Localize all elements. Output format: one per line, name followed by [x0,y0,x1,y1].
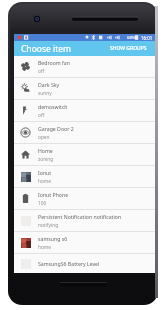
other: Garage door [20,127,31,138]
staticText: zoning [38,156,54,163]
other: Fan [20,61,31,72]
staticText: Home [38,147,53,154]
staticText: 100 [38,200,47,207]
other: Avatar [21,238,31,248]
staticText: Choose item [21,43,71,55]
staticText: Bedroom fan [38,59,70,66]
staticText: demoswitch [38,103,68,110]
staticText: Ionut [38,169,52,176]
button[interactable]: Garage door [14,122,155,144]
button[interactable]: SHOW GROUPS [107,42,150,55]
staticText: SHOW GROUPS [110,45,147,52]
staticText: off [38,68,45,75]
staticText: home [38,178,52,185]
staticText: Dark Sky [38,81,60,88]
staticText: 68% [127,35,136,41]
staticText: notifying [38,222,59,229]
staticText: home [38,244,52,251]
button[interactable]: Item [14,254,155,273]
button[interactable]: Fan [14,56,155,78]
staticText: Persistent Notification notification [38,213,122,220]
other: Switch [20,105,31,116]
staticText: 16:01 [141,35,153,41]
button[interactable]: Avatar [14,232,155,254]
other: Avatar [21,172,31,182]
other: Battery [20,193,31,204]
other: Weather [20,83,31,94]
button[interactable]: Avatar [14,166,155,188]
button[interactable]: Weather [14,78,155,100]
staticText: open [38,134,50,141]
staticText: SamsungS6 Battery Level [38,260,100,267]
button[interactable]: Item [14,210,155,232]
staticText: sunny [38,90,52,97]
button[interactable]: Battery [14,188,155,210]
button[interactable]: Switch [14,100,155,122]
other: Home [20,149,31,160]
staticText: samsung s6 [38,235,68,242]
staticText: Ionut Phone [38,191,69,198]
button[interactable]: Home [14,144,155,166]
staticText: off [38,112,45,119]
staticText: Garage Door 2 [38,125,74,132]
